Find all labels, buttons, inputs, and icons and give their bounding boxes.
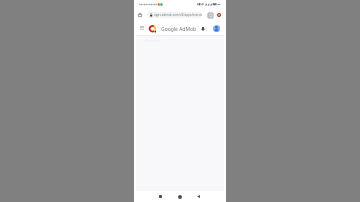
button[interactable]: Notifications: [199, 23, 207, 33]
staticText: apps.admob.com/v2/apps/overview/home/mai…: [154, 13, 202, 17]
button[interactable]: Stop recording: [213, 10, 225, 20]
button[interactable]: Recents: [154, 191, 166, 202]
button[interactable]: Tabs: [204, 10, 216, 20]
staticText: Google AdMob: [161, 26, 197, 33]
button[interactable]: Home: [136, 10, 144, 20]
button[interactable]: Account: [213, 25, 220, 32]
button[interactable]: Back: [192, 191, 204, 202]
button[interactable]: Menu: [138, 23, 146, 33]
button[interactable]: Home: [174, 191, 186, 202]
button[interactable]: apps.admob.com/v2/apps/overview/home/mai…: [147, 12, 202, 18]
